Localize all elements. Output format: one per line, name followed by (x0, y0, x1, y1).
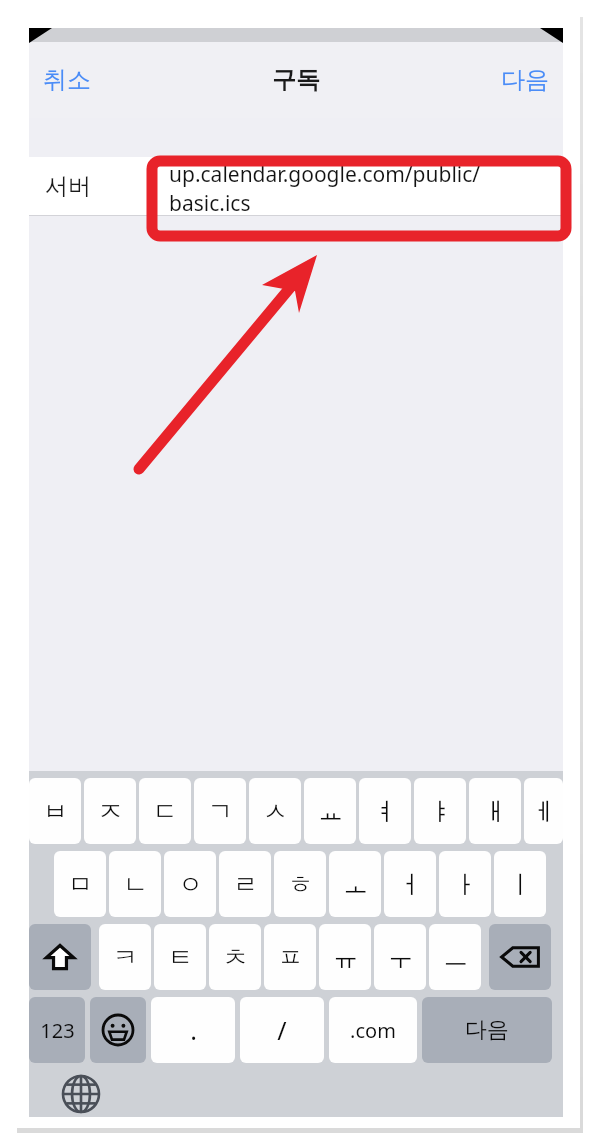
staticText: 취소 (43, 65, 91, 95)
button[interactable]: ㅁ (54, 851, 106, 917)
button[interactable]: ㅏ (439, 851, 491, 917)
staticText: ㅐ (483, 796, 508, 827)
button[interactable]: ㅠ (319, 924, 371, 990)
button[interactable]: ㄱ (194, 778, 246, 844)
button[interactable]: ㄴ (109, 851, 161, 917)
button[interactable]: ㅕ (359, 778, 411, 844)
button[interactable]: Emoji (90, 997, 146, 1063)
staticText: ㅂ (43, 796, 68, 827)
button[interactable]: ㅗ (329, 851, 381, 917)
staticText: ㄷ (153, 796, 178, 827)
button[interactable]: Change keyboard language (57, 1071, 105, 1117)
button[interactable]: ㄷ (139, 778, 191, 844)
staticText: 다음 (501, 65, 549, 95)
button[interactable]: 취소 (35, 57, 99, 103)
staticText: ㅈ (98, 796, 123, 827)
staticText: ㅗ (343, 869, 368, 900)
button[interactable]: 다음 (422, 997, 552, 1063)
staticText: ㅑ (428, 796, 453, 827)
button[interactable]: ㅊ (209, 924, 261, 990)
staticText: ㄹ (233, 869, 258, 900)
button[interactable]: ㅡ (429, 924, 481, 990)
staticText: ㅌ (168, 942, 193, 973)
button[interactable]: 123 (29, 997, 85, 1063)
button[interactable]: ㅣ (494, 851, 546, 917)
staticText: ㅕ (373, 796, 398, 827)
staticText: ㅠ (333, 942, 358, 973)
button[interactable]: . (151, 997, 235, 1063)
staticText: ㅇ (178, 869, 203, 900)
button[interactable]: ㅔ (524, 778, 563, 844)
button[interactable]: up.calendar.google.com/public/basic.ics (156, 160, 560, 212)
staticText: ㄴ (123, 869, 148, 900)
staticText: 서버 (45, 172, 91, 201)
button[interactable]: ㅍ (264, 924, 316, 990)
button[interactable]: Backspace (489, 924, 551, 990)
staticText: ㅜ (388, 942, 413, 973)
staticText: ㅣ (508, 869, 533, 900)
staticText: ㅅ (263, 796, 288, 827)
staticText: ㅊ (223, 942, 248, 973)
button[interactable]: ㅈ (84, 778, 136, 844)
staticText: ㅓ (398, 869, 423, 900)
staticText: .com (350, 1017, 396, 1044)
button[interactable]: Shift (29, 924, 91, 990)
button[interactable]: ㄹ (219, 851, 271, 917)
staticText: ㅔ (531, 796, 556, 827)
button[interactable]: ㅂ (29, 778, 81, 844)
button[interactable]: / (240, 997, 324, 1063)
button[interactable]: ㅇ (164, 851, 216, 917)
staticText: 123 (40, 1017, 75, 1044)
staticText: / (277, 1013, 287, 1047)
staticText: ㅁ (68, 869, 93, 900)
button[interactable]: ㅌ (154, 924, 206, 990)
staticText: ㄱ (208, 796, 233, 827)
button[interactable]: ㅎ (274, 851, 326, 917)
staticText: ㅎ (288, 869, 313, 900)
button[interactable]: ㅓ (384, 851, 436, 917)
button[interactable]: ㅑ (414, 778, 466, 844)
staticText: ㅋ (113, 942, 138, 973)
button[interactable]: ㅜ (374, 924, 426, 990)
staticText: ㅡ (443, 942, 468, 973)
staticText: ㅍ (278, 942, 303, 973)
button[interactable]: ㅋ (99, 924, 151, 990)
staticText: up.calendar.google.com/public/basic.ics (169, 160, 560, 212)
staticText: . (190, 1013, 197, 1047)
button[interactable]: ㅅ (249, 778, 301, 844)
staticText: ㅏ (453, 869, 478, 900)
button[interactable]: ㅛ (304, 778, 356, 844)
button[interactable]: 다음 (493, 57, 557, 103)
button[interactable]: .com (329, 997, 417, 1063)
staticText: 다음 (465, 1016, 509, 1044)
button[interactable]: ㅐ (469, 778, 521, 844)
staticText: ㅛ (318, 796, 343, 827)
staticText: 구독 (272, 65, 320, 95)
